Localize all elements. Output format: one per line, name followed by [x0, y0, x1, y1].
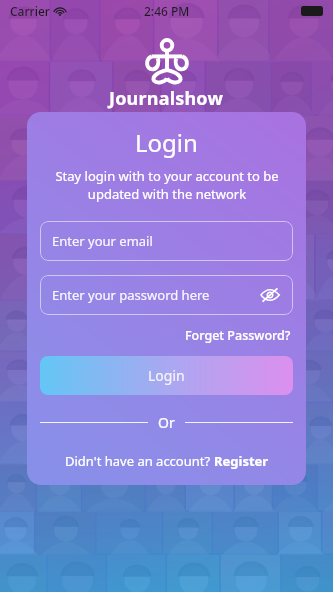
- staticText: Or: [158, 413, 175, 432]
- staticText: Enter your password here: [52, 286, 210, 304]
- staticText: Didn't have an account?: [65, 452, 214, 470]
- staticText: Register: [214, 452, 269, 470]
- button[interactable]: Forget Password?: [183, 325, 293, 346]
- staticText: Carrier: [10, 3, 50, 19]
- staticText: 2:46 PM: [144, 3, 190, 19]
- staticText: Forget Password?: [185, 327, 291, 344]
- staticText: Stay login with to your account to be up…: [55, 167, 279, 203]
- staticText: Journalshow: [109, 86, 224, 111]
- button[interactable]: Enter your email: [40, 221, 293, 261]
- button[interactable]: Enter your password here: [40, 275, 293, 315]
- button[interactable]: Show password: [259, 284, 281, 306]
- button[interactable]: Login: [40, 356, 293, 395]
- staticText: Login: [148, 366, 185, 385]
- staticText: Enter your email: [52, 232, 153, 250]
- button[interactable]: Didn't have an account?: [63, 450, 271, 472]
- staticText: Login: [135, 126, 198, 159]
